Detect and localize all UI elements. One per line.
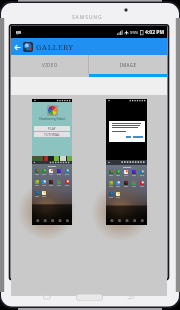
staticText: Shadowing Robot <box>39 117 66 121</box>
button[interactable]: Home <box>76 294 103 301</box>
button[interactable]: Shadowing Robot <box>32 99 72 225</box>
button[interactable]: Back <box>127 293 136 301</box>
staticText: 4:02 PM <box>145 29 165 36</box>
button[interactable] <box>106 99 147 225</box>
staticText: IMAGE <box>120 62 137 68</box>
button[interactable]: PLAY <box>34 126 70 131</box>
staticText: TUTORIAL <box>44 132 61 137</box>
staticText: VIDEO <box>42 62 58 68</box>
button[interactable]: TUTORIAL <box>34 132 70 137</box>
staticText: GALLERY <box>36 42 74 52</box>
button[interactable]: VIDEO <box>11 55 88 74</box>
button[interactable]: IMAGE <box>89 55 167 74</box>
staticText: SAMSUNG <box>72 14 103 21</box>
staticText: PLAY <box>48 126 56 131</box>
staticText: 99% <box>130 30 139 36</box>
button[interactable]: Navigate up <box>13 40 22 54</box>
button[interactable]: Recents <box>43 293 52 301</box>
